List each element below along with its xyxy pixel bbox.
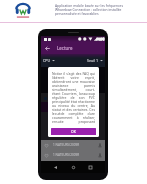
staticText: Lecture [57,45,73,51]
button[interactable]: Recents [87,164,94,171]
button[interactable]: Home [70,164,77,171]
staticText: Seuil 1 [87,58,99,63]
staticText: 1 NATEURS/2009R [53,143,80,147]
staticText: CPU [43,58,51,63]
button[interactable]: 1 NATEURS/2009R [41,140,105,150]
button[interactable]: Back [52,164,59,171]
button[interactable]: CPU [43,58,55,63]
button[interactable]: OK [51,128,96,135]
staticText: Wharebow Connection : collection install… [55,7,122,11]
button[interactable]: Seuil 1 [87,58,103,63]
button[interactable]: 1 NATEURS/2009R [41,150,105,160]
staticText: OK [71,129,76,134]
staticText: 1 NATEURS/2009R [53,153,80,157]
staticText: Application mobile basée sur les fréquen… [55,3,124,7]
button[interactable]: Back [43,44,52,53]
staticText: Notice il s'agit des FAQ qui libérerit v… [52,71,95,124]
staticText: personnalisée et favorablies [55,11,99,15]
